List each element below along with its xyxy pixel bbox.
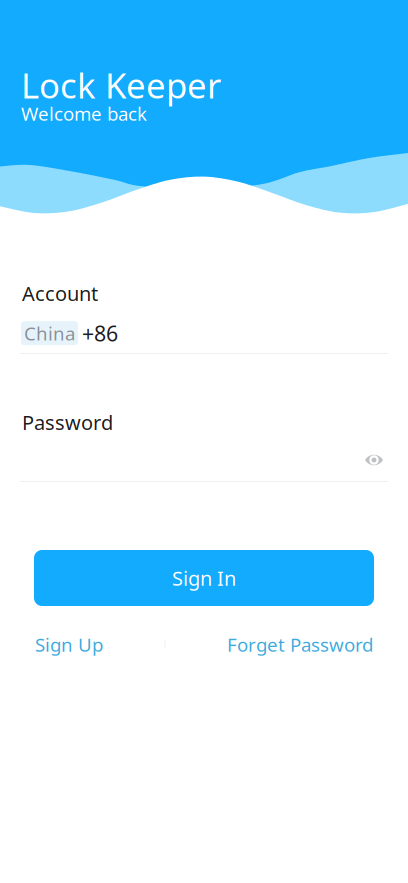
staticText: China [24, 321, 75, 346]
staticText: Forget Password [227, 632, 373, 657]
staticText: Sign In [172, 565, 236, 591]
button[interactable]: Show password [360, 445, 388, 475]
button[interactable]: Forget Password [227, 632, 373, 657]
staticText: Account [22, 280, 98, 307]
button[interactable]: Sign Up [35, 632, 103, 657]
staticText: Password [22, 409, 113, 436]
staticText: +86 [82, 319, 118, 347]
button[interactable]: Sign In [34, 550, 374, 606]
staticText: Lock Keeper [21, 62, 221, 108]
staticText: Sign Up [35, 632, 103, 657]
staticText: Welcome back [21, 101, 147, 126]
